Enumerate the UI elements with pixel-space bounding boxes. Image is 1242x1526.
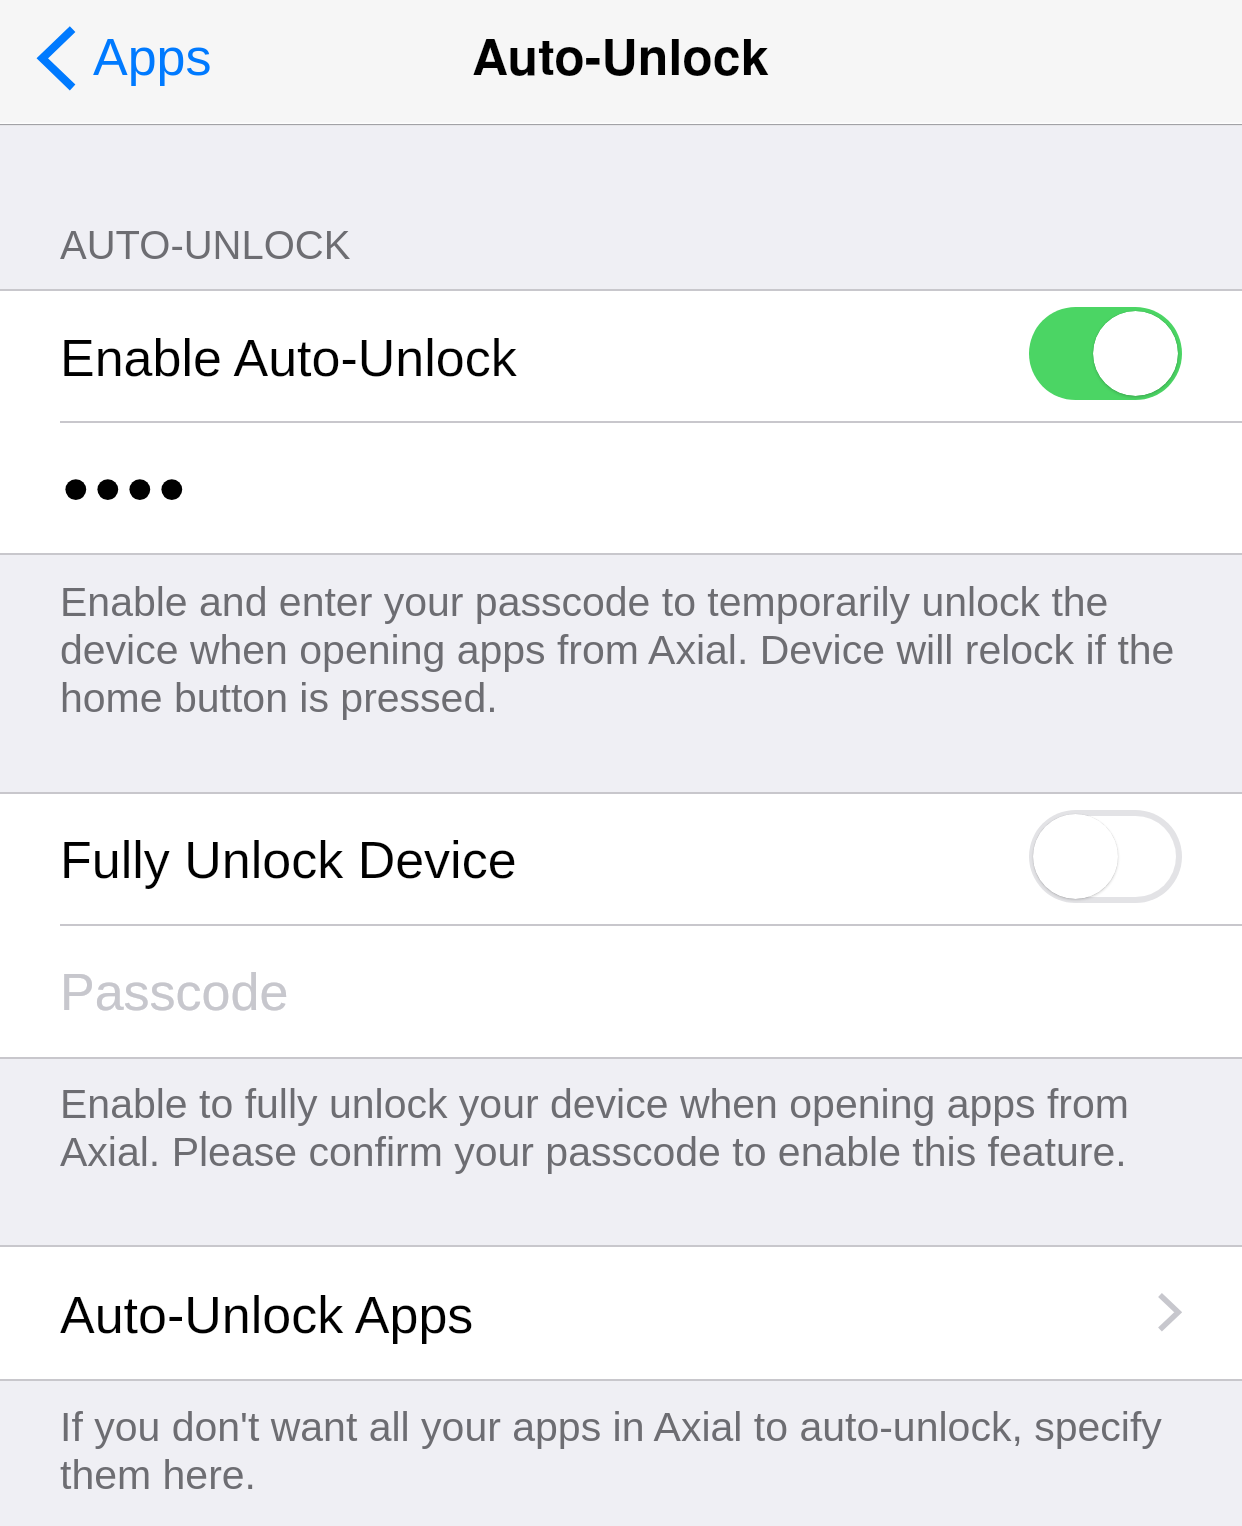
staticText: If you don't want all your apps in Axial… xyxy=(60,1404,1162,1450)
staticText: AUTO-UNLOCK xyxy=(60,223,351,268)
staticText: home button is pressed. xyxy=(60,675,498,721)
staticText: Enable Auto-Unlock xyxy=(60,329,517,387)
button[interactable]: Fully Unlock Device, off xyxy=(1029,810,1182,903)
staticText: Axial. Please confirm your passcode to e… xyxy=(60,1129,1127,1175)
staticText: Enable to fully unlock your device when … xyxy=(60,1081,1129,1127)
staticText: Auto-Unlock xyxy=(472,19,769,91)
button[interactable] xyxy=(0,423,1242,553)
button[interactable]: Enable Auto-Unlock, on xyxy=(1029,307,1182,400)
staticText: Apps xyxy=(93,28,212,86)
staticText: device when opening apps from Axial. Dev… xyxy=(60,627,1175,673)
staticText: Passcode xyxy=(60,963,289,1021)
button[interactable]: Fully Unlock Device xyxy=(0,794,1242,924)
staticText: Enable and enter your passcode to tempor… xyxy=(60,579,1109,625)
button[interactable]: Enable Auto-Unlock xyxy=(0,291,1242,421)
staticText: Auto-Unlock Apps xyxy=(60,1286,474,1344)
button[interactable]: Auto-Unlock Apps xyxy=(0,1247,1242,1379)
staticText: them here. xyxy=(60,1452,256,1498)
button[interactable]: Passcode xyxy=(0,926,1242,1057)
staticText: Fully Unlock Device xyxy=(60,831,517,889)
button[interactable]: Back to Apps xyxy=(20,0,240,124)
